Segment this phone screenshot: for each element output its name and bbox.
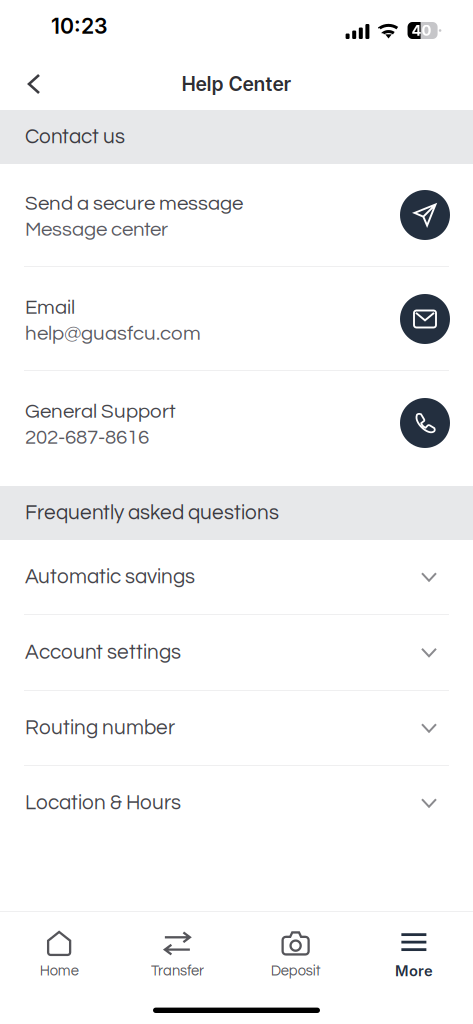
button[interactable]: Routing number <box>0 691 473 765</box>
staticText: Home <box>40 963 79 978</box>
staticText: Email <box>25 297 75 318</box>
staticText: help@guasfcu.com <box>25 323 201 344</box>
staticText: Message center <box>25 219 168 240</box>
button[interactable]: General Support <box>0 371 473 486</box>
staticText: Frequently asked questions <box>25 502 279 524</box>
button[interactable]: Send a secure message <box>0 164 473 266</box>
button[interactable]: Location & Hours <box>0 766 473 840</box>
staticText: Send a secure message <box>25 193 243 214</box>
button[interactable]: Back <box>0 61 61 107</box>
staticText: More <box>395 962 433 980</box>
staticText: Deposit <box>271 963 321 978</box>
staticText: 40 <box>412 22 432 39</box>
button[interactable]: Transfer <box>118 912 236 978</box>
staticText: Routing number <box>25 717 175 739</box>
staticText: Automatic savings <box>25 566 195 588</box>
button[interactable]: Deposit <box>236 912 355 978</box>
button[interactable]: More <box>355 912 473 978</box>
staticText: Contact us <box>25 126 125 148</box>
staticText: General Support <box>25 401 176 422</box>
button[interactable]: Account settings <box>0 615 473 690</box>
button[interactable]: Automatic savings <box>0 540 473 614</box>
staticText: Location & Hours <box>25 792 181 814</box>
staticText: Help Center <box>181 72 291 96</box>
staticText: 202-687-8616 <box>25 427 149 448</box>
button[interactable]: Home <box>0 912 118 978</box>
staticText: Account settings <box>25 642 181 663</box>
staticText: Transfer <box>151 963 204 978</box>
button[interactable]: Email <box>0 267 473 370</box>
staticText: 10:23 <box>51 13 108 39</box>
